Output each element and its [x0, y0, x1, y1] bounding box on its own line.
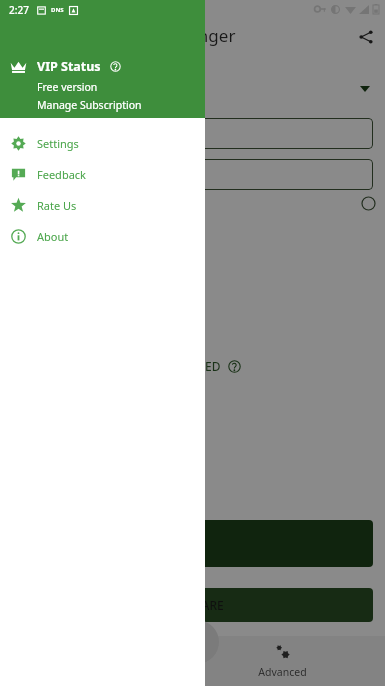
button[interactable]: Add	[175, 620, 219, 664]
staticText: FORMATTED	[150, 358, 221, 374]
button[interactable]: About	[0, 221, 205, 252]
staticText: 2:27	[9, 3, 29, 17]
staticText: Rate Us	[37, 198, 77, 213]
button[interactable]: Rate Us	[0, 190, 205, 221]
staticText: Advanced	[258, 665, 307, 679]
button[interactable]	[12, 159, 373, 190]
button[interactable]: Manage Subscription	[37, 98, 142, 112]
staticText: Settings	[37, 136, 79, 151]
staticText: Free version	[37, 80, 98, 94]
button[interactable]	[12, 118, 373, 149]
button[interactable]: Advanced	[244, 640, 321, 683]
button[interactable]: SHARE	[12, 588, 373, 622]
staticText: Feedback	[37, 167, 86, 182]
button[interactable]: Feedback	[0, 159, 205, 190]
button[interactable]	[12, 520, 373, 567]
staticText: Manage Subscription	[37, 98, 142, 112]
button[interactable]: Settings	[0, 128, 205, 159]
staticText: Text Changer	[130, 24, 236, 47]
staticText: About	[37, 229, 69, 244]
button[interactable]: VIP Status help	[110, 61, 121, 72]
staticText: VIP Status	[37, 58, 101, 75]
button[interactable]: Share	[355, 26, 377, 48]
staticText: SHARE	[186, 597, 224, 613]
staticText: DNS	[51, 6, 64, 14]
